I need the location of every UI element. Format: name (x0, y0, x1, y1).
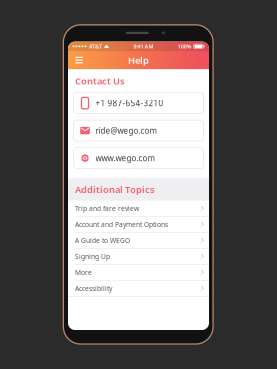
button[interactable]: +1 987-654-3210 (73, 93, 203, 114)
staticText: Help (128, 54, 149, 66)
button[interactable]: Signing Up (68, 249, 209, 265)
staticText: Contact Us (75, 75, 125, 87)
button[interactable]: Menu (71, 52, 86, 68)
staticText: +1 987-654-3210 (95, 98, 163, 108)
staticText: More (75, 268, 92, 277)
button[interactable]: Accessibility (68, 281, 209, 297)
staticText: Trip and fare review (75, 204, 139, 213)
staticText: Account and Payment Options (75, 220, 168, 229)
staticText: Signing Up (75, 252, 110, 261)
button[interactable]: ride@wego.com (73, 120, 203, 141)
staticText: 100% (178, 43, 192, 50)
button[interactable]: A Guide to WEGO (68, 233, 209, 249)
staticText: Accessibility (75, 284, 112, 293)
staticText: ride@wego.com (95, 125, 156, 136)
button[interactable]: More (68, 265, 209, 281)
staticText: AT&T (89, 43, 102, 50)
staticText: 9:41 AM (133, 43, 153, 50)
staticText: www.wego.com (95, 153, 154, 163)
button[interactable]: Trip and fare review (68, 201, 209, 217)
staticText: A Guide to WEGO (75, 236, 130, 245)
button[interactable]: Account and Payment Options (68, 217, 209, 233)
button[interactable]: www.wego.com (73, 148, 203, 169)
staticText: Additional Topics (75, 183, 155, 196)
